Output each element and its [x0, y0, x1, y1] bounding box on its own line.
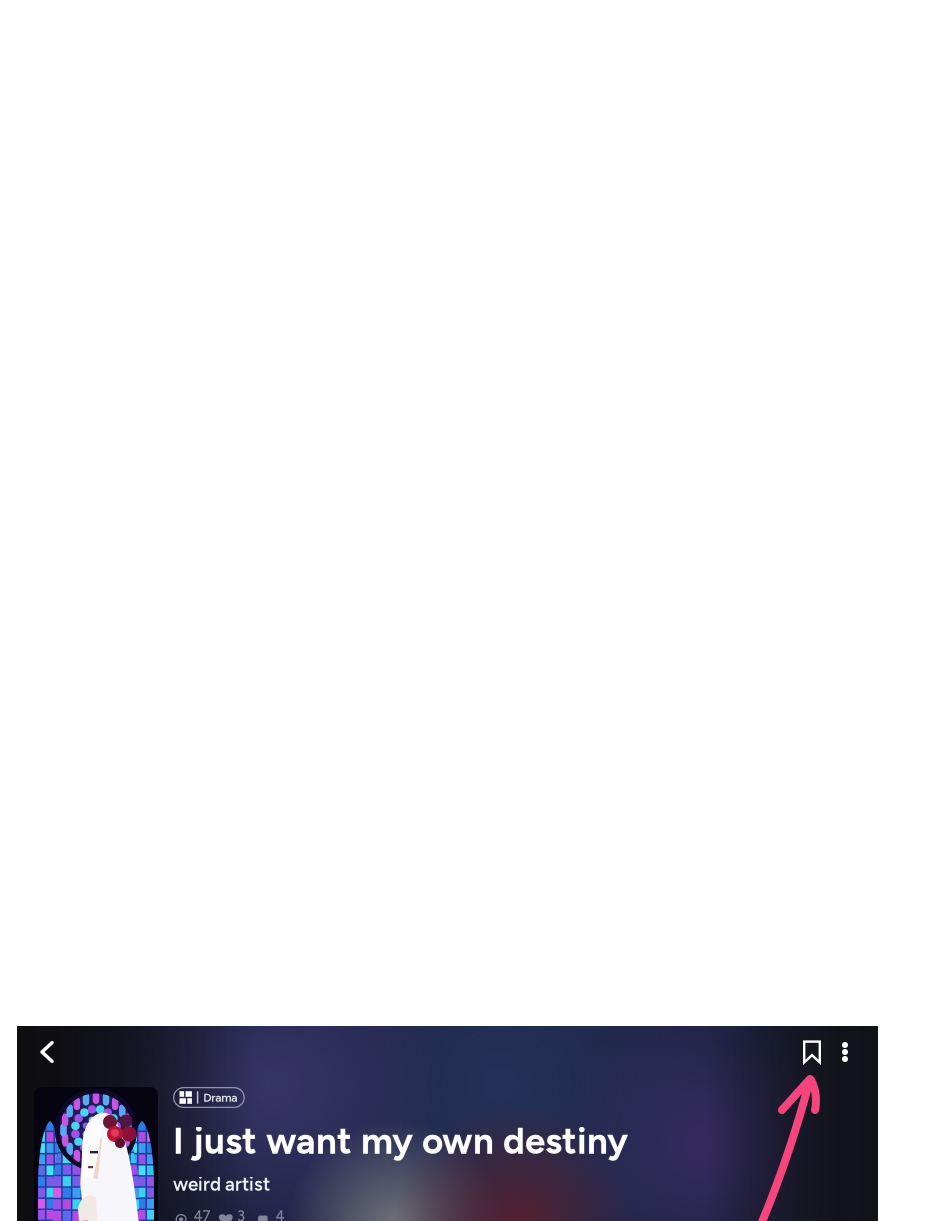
staticText: Drama: [203, 1090, 237, 1105]
button[interactable]: Back: [24, 1030, 70, 1074]
button[interactable]: Bookmark: [785, 1030, 835, 1074]
staticText: 4: [276, 1207, 285, 1221]
button[interactable]: More options: [835, 1030, 855, 1074]
staticText: I just want my own destiny: [173, 1119, 628, 1163]
staticText: 3: [237, 1207, 245, 1221]
staticText: 47: [194, 1207, 211, 1221]
staticText: weird artist: [173, 1173, 270, 1195]
